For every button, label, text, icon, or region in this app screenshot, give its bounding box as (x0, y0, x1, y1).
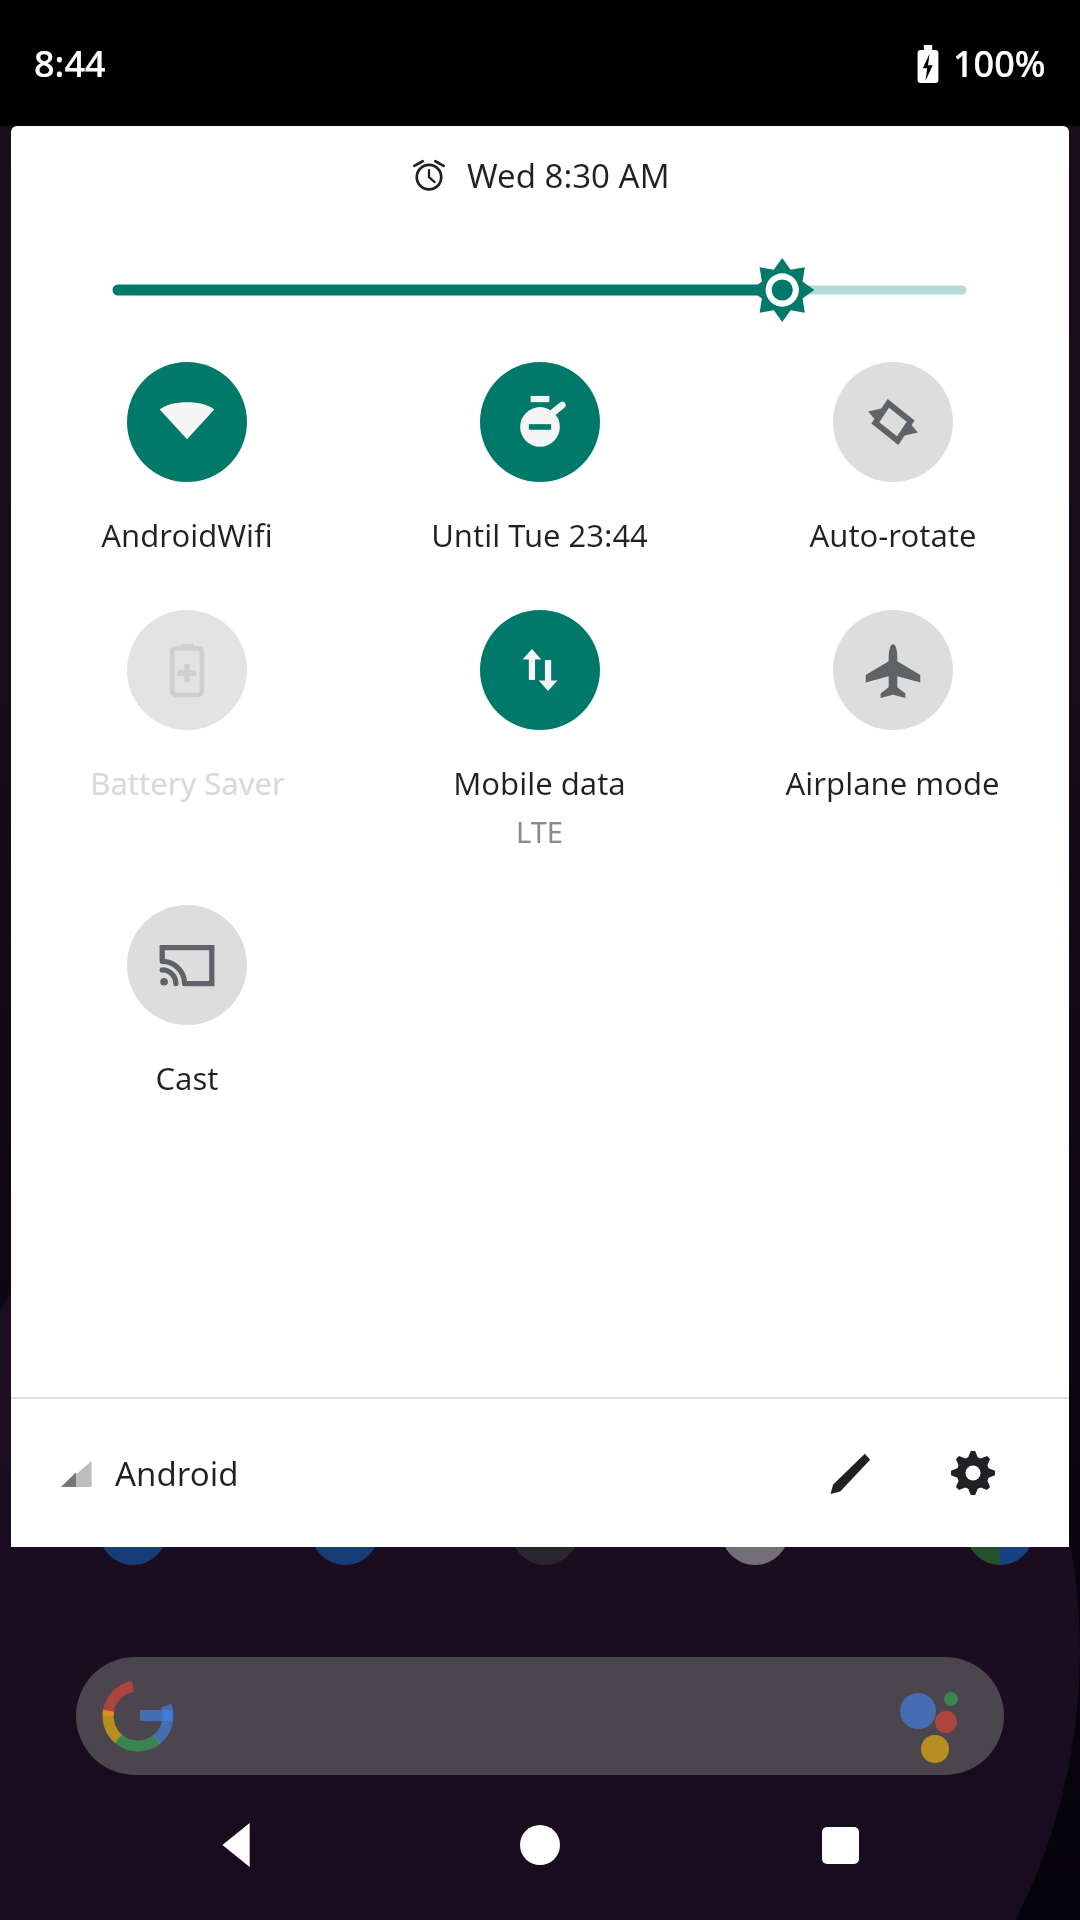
staticText: Until Tue 23:44 (431, 514, 648, 556)
staticText: Mobile data (453, 762, 626, 804)
staticText: Auto-rotate (809, 514, 977, 556)
button[interactable]: Battery Saver (11, 608, 363, 804)
button[interactable]: Airplane mode (716, 608, 1069, 804)
staticText: Cast (155, 1057, 219, 1099)
staticText: Airplane mode (785, 762, 1000, 804)
button[interactable]: Edit (801, 1425, 897, 1521)
button[interactable]: Until Tue 23:44 (363, 360, 716, 556)
button[interactable]: Google search (76, 1657, 1004, 1775)
staticText: LTE (516, 812, 563, 851)
button[interactable]: Back (180, 1785, 300, 1905)
staticText: Android (115, 1451, 239, 1496)
staticText: Battery Saver (90, 762, 285, 804)
button[interactable]: Brightness (11, 224, 1069, 334)
button[interactable]: Recent apps (780, 1785, 900, 1905)
staticText: Wed 8:30 AM (467, 153, 670, 198)
button[interactable]: Home (480, 1785, 600, 1905)
button[interactable]: AndroidWifi (11, 360, 363, 556)
staticText: 100% (953, 39, 1046, 88)
staticText: 8:44 (34, 39, 106, 88)
button[interactable]: Wed 8:30 AM (11, 126, 1069, 224)
button[interactable]: Android (59, 1451, 239, 1496)
button[interactable]: Auto-rotate (716, 360, 1069, 556)
button[interactable]: Mobile data (363, 608, 716, 851)
button[interactable]: Cast (11, 903, 363, 1099)
button[interactable]: Settings (925, 1425, 1021, 1521)
staticText: AndroidWifi (101, 514, 273, 556)
